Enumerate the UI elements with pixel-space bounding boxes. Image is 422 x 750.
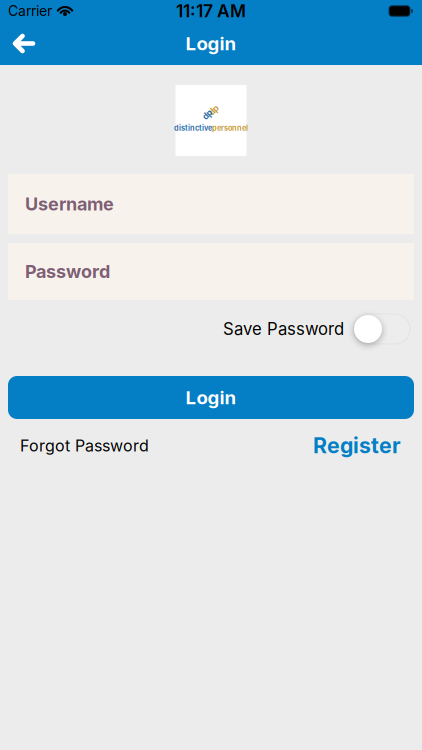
button[interactable]: Password (8, 243, 414, 300)
button[interactable]: Login (8, 376, 414, 419)
staticText: Password (25, 261, 110, 282)
staticText: Login (185, 32, 236, 54)
button[interactable]: Register (313, 433, 401, 458)
staticText: distinctive (174, 124, 212, 132)
button[interactable] (353, 314, 410, 344)
staticText: dp (203, 110, 213, 120)
staticText: 11:17 AM (176, 1, 246, 21)
staticText: Carrier (8, 3, 52, 19)
button[interactable]: Forgot Password (20, 436, 149, 455)
staticText: personnel (212, 124, 248, 132)
staticText: dp (208, 105, 218, 115)
staticText: Username (25, 193, 114, 215)
staticText: Register (313, 433, 401, 458)
staticText: Forgot Password (20, 436, 149, 455)
staticText: Save Password (223, 319, 344, 339)
staticText: Login (185, 386, 236, 408)
button[interactable] (0, 26, 35, 61)
button[interactable]: Username (8, 174, 414, 234)
